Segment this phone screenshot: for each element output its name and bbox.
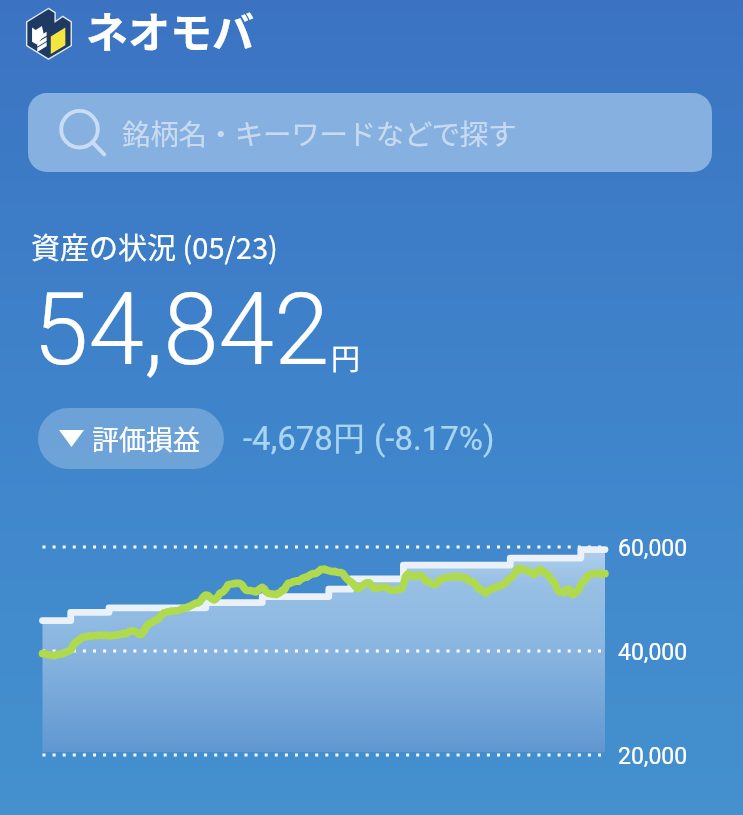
staticText: 60,000 <box>618 535 688 562</box>
button[interactable]: ネオモバ <box>24 0 255 62</box>
staticText: 銘柄名・キーワードなどで探す <box>122 112 517 153</box>
button[interactable]: 評価損益 <box>38 408 224 469</box>
staticText: 評価損益 <box>92 419 200 458</box>
staticText: 40,000 <box>618 639 688 666</box>
button[interactable]: Search <box>28 93 712 172</box>
other: Search <box>58 105 113 160</box>
staticText: 54,842 <box>33 271 330 388</box>
staticText: -4,678円 (-8.17%) <box>243 418 495 460</box>
staticText: ネオモバ <box>86 0 255 60</box>
staticText: 資産の状況 (05/23) <box>31 225 278 267</box>
staticText: 円 <box>331 336 361 378</box>
staticText: 20,000 <box>618 743 688 770</box>
